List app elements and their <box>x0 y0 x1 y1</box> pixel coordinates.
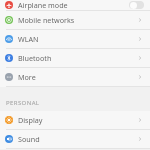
staticText: PERSONAL <box>6 99 40 107</box>
staticText: Bluetooth <box>18 53 52 63</box>
staticText: WLAN <box>18 34 39 44</box>
staticText: Display <box>18 115 43 125</box>
staticText: Mobile networks <box>18 15 75 25</box>
button[interactable]: Airplane mode <box>0 0 150 10</box>
staticText: More <box>18 72 36 82</box>
button[interactable]: Mobile networks <box>0 11 150 29</box>
button[interactable]: Airplane mode switch <box>129 1 144 9</box>
button[interactable]: WLAN <box>0 30 150 48</box>
button[interactable]: Display <box>0 111 150 129</box>
button[interactable]: Bluetooth <box>0 49 150 67</box>
staticText: Airplane mode <box>18 0 68 10</box>
button[interactable]: Sound <box>0 130 150 148</box>
staticText: Sound <box>18 134 40 144</box>
button[interactable]: More <box>0 68 150 86</box>
